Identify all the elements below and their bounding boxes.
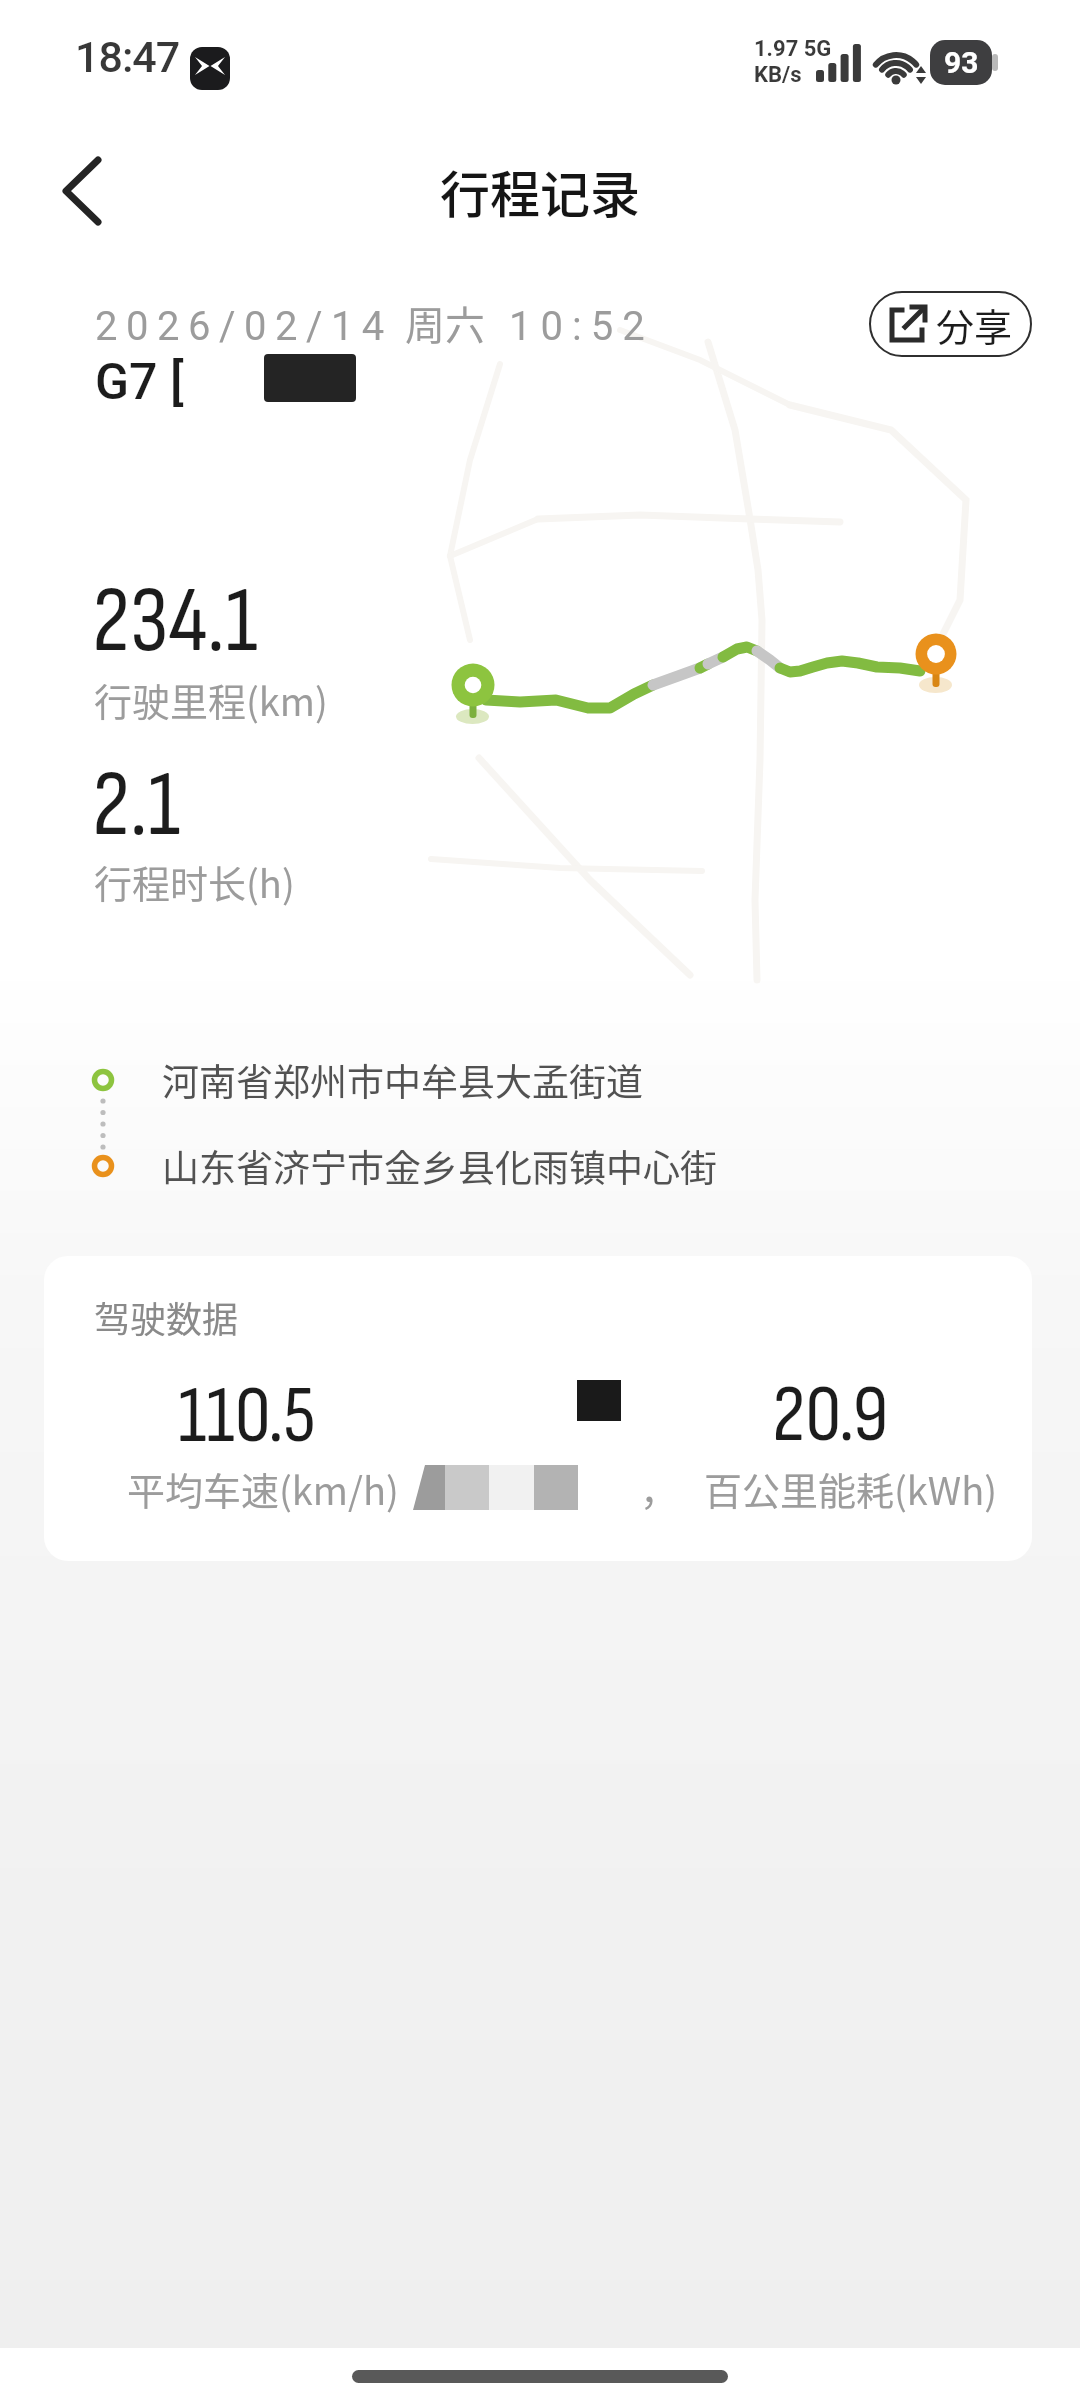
- staticText: 分享: [936, 297, 1013, 352]
- button[interactable]: [44, 1256, 1032, 1561]
- staticText: G7 [: [95, 353, 184, 412]
- staticText: 1.97 5G: [754, 36, 832, 62]
- staticText: 周六: [405, 294, 485, 352]
- staticText: 2026/02/14: [95, 303, 393, 350]
- staticText: 行程记录: [440, 155, 640, 225]
- staticText: 行驶里程(km): [94, 672, 328, 727]
- staticText: 234.1: [92, 567, 258, 677]
- staticText: 平均车速(km/h): [127, 1461, 399, 1516]
- staticText: 18:47: [75, 32, 180, 82]
- staticText: 110.5: [178, 1368, 316, 1465]
- staticText: 2.1: [92, 751, 181, 861]
- button[interactable]: 分享: [869, 291, 1032, 357]
- staticText: 百公里能耗(kWh): [704, 1461, 998, 1516]
- staticText: 20.9: [772, 1367, 889, 1464]
- staticText: 93: [944, 45, 979, 80]
- staticText: 10:52: [509, 303, 654, 350]
- staticText: 河南省郑州市中牟县大孟街道: [162, 1053, 643, 1107]
- staticText: 山东省济宁市金乡县化雨镇中心街: [162, 1139, 717, 1193]
- staticText: KB/s: [754, 62, 802, 88]
- staticText: ，: [640, 1461, 679, 1516]
- staticText: 驾驶数据: [94, 1291, 239, 1343]
- button[interactable]: [40, 140, 140, 240]
- staticText: 行程时长(h): [94, 854, 295, 909]
